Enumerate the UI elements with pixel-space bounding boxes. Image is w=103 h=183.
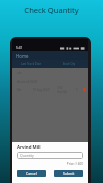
staticText: Quantity xyxy=(20,153,34,158)
button[interactable]: Home xyxy=(12,51,88,60)
staticText: Submit xyxy=(63,171,75,176)
button[interactable]: Cancel xyxy=(17,170,46,177)
staticText: 10 Aug 2020 xyxy=(33,88,50,92)
staticText: Cancel xyxy=(26,171,37,176)
staticText: Arvind Mill xyxy=(17,144,41,150)
staticText: Arvind Mill xyxy=(17,79,37,84)
staticText: 5:41 xyxy=(16,46,23,50)
staticText: Mtr xyxy=(17,88,22,92)
staticText: Price: ₹ 400 xyxy=(12,162,83,166)
staticText: Home xyxy=(16,53,29,59)
staticText: Last Stock Date xyxy=(12,62,50,66)
staticText: abc xyxy=(17,71,22,75)
staticText: Day Sqft xyxy=(57,90,68,94)
button[interactable]: Remove item xyxy=(83,88,86,91)
staticText: Check Quantity xyxy=(0,5,103,15)
button[interactable]: Submit xyxy=(54,170,83,177)
staticText: Stock Qty xyxy=(50,62,88,66)
button[interactable]: Quantity xyxy=(17,152,83,159)
